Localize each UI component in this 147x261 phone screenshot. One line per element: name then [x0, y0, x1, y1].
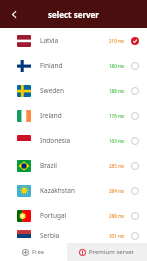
staticText: 176 ms — [109, 113, 125, 119]
staticText: 288 ms — [109, 213, 125, 219]
staticText: Latvia — [40, 36, 109, 45]
button[interactable]: Latvia — [0, 28, 147, 53]
staticText: Kazakhstan — [40, 186, 109, 195]
staticText: 219 ms — [109, 38, 125, 44]
staticText: 180 ms — [109, 63, 125, 69]
staticText: 301 ms — [109, 233, 125, 239]
staticText: Serbia — [40, 231, 109, 240]
button[interactable]: Kazakhstan — [0, 178, 147, 203]
button[interactable]: Free — [0, 243, 67, 261]
button[interactable]: Portugal — [0, 203, 147, 228]
staticText: 188 ms — [109, 88, 125, 94]
button[interactable]: Back — [4, 4, 24, 24]
staticText: 284 ms — [109, 188, 125, 194]
staticText: select server — [48, 9, 99, 20]
button[interactable]: Indonesia — [0, 128, 147, 153]
staticText: Free — [32, 248, 45, 256]
staticText: Finland — [40, 61, 109, 70]
button[interactable]: Sweden — [0, 78, 147, 103]
staticText: 163 ms — [109, 138, 125, 144]
button[interactable]: Finland — [0, 53, 147, 78]
button[interactable]: Ireland — [0, 103, 147, 128]
staticText: Ireland — [40, 111, 109, 120]
staticText: 285 ms — [109, 163, 125, 169]
staticText: Brazil — [40, 161, 109, 170]
button[interactable]: Serbia — [0, 228, 147, 243]
staticText: Premium server — [89, 248, 135, 256]
staticText: Sweden — [40, 86, 109, 95]
staticText: Portugal — [40, 211, 109, 220]
staticText: Indonesia — [40, 136, 109, 145]
button[interactable]: Premium server — [67, 243, 147, 261]
button[interactable]: Brazil — [0, 153, 147, 178]
